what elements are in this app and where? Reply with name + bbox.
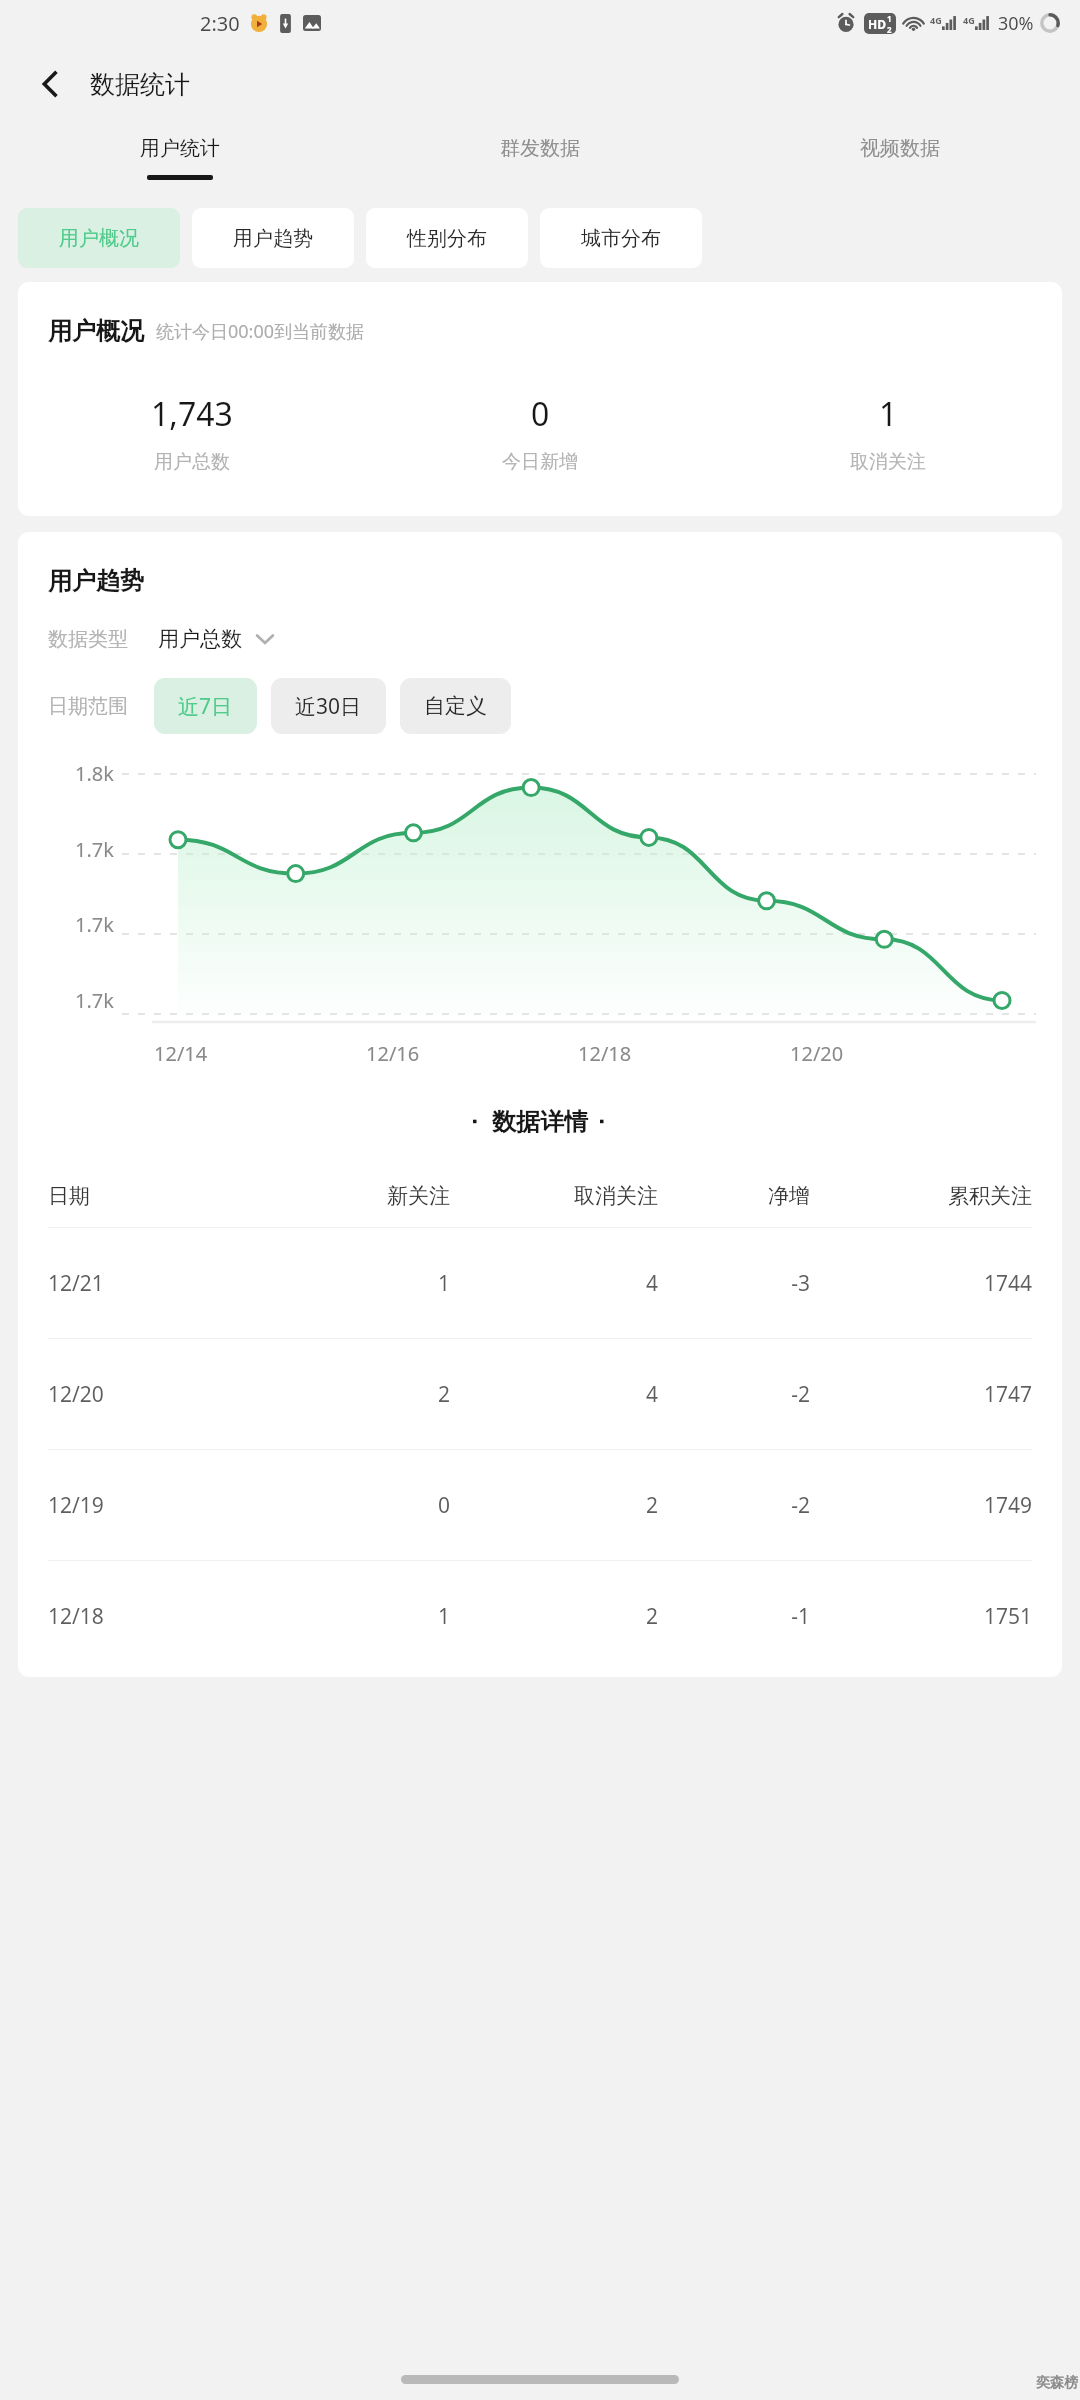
button[interactable]: 近30日	[271, 678, 386, 734]
button[interactable]: 12/20	[18, 1339, 1062, 1449]
staticText: -2	[658, 1380, 810, 1409]
staticText: -2	[658, 1491, 810, 1520]
staticText: 0	[531, 392, 550, 436]
staticText: 用户总数	[154, 450, 230, 474]
staticText: 2:30	[200, 10, 240, 37]
staticText: 30%	[998, 11, 1034, 36]
staticText: 12/20	[790, 1040, 844, 1067]
staticText: 用户概况	[59, 226, 139, 251]
staticText: 今日新增	[502, 450, 578, 474]
button[interactable]: 用户统计	[0, 122, 360, 198]
staticText: 1	[256, 1269, 450, 1298]
staticText: 12/14	[154, 1040, 208, 1067]
staticText: 近7日	[178, 692, 233, 721]
staticText: 4G	[930, 14, 942, 26]
button[interactable]: 群发数据	[360, 122, 720, 198]
staticText: 群发数据	[500, 136, 580, 161]
staticText: 1751	[810, 1602, 1032, 1631]
staticText: 奕森榜	[1036, 2374, 1078, 2392]
button[interactable]: 自定义	[400, 678, 511, 734]
staticText: 12/21	[48, 1269, 256, 1298]
staticText: 1	[879, 392, 898, 436]
staticText: 数据详情	[492, 1107, 588, 1137]
staticText: 1	[256, 1602, 450, 1631]
staticText: 1.7k	[75, 836, 114, 863]
staticText: 累积关注	[810, 1183, 1032, 1209]
staticText: 4G	[963, 14, 975, 26]
staticText: -3	[658, 1269, 810, 1298]
staticText: 12/18	[48, 1602, 256, 1631]
staticText: -1	[658, 1602, 810, 1631]
staticText: 净增	[658, 1183, 810, 1209]
button[interactable]: 城市分布	[540, 208, 702, 268]
staticText: 1744	[810, 1269, 1032, 1298]
staticText: 数据类型	[48, 627, 128, 652]
staticText: 4	[450, 1380, 658, 1409]
button[interactable]: Back	[26, 60, 74, 108]
staticText: 日期范围	[48, 694, 128, 719]
button[interactable]: 12/19	[18, 1450, 1062, 1560]
button[interactable]: 用户概况	[18, 208, 180, 268]
staticText: 2	[256, 1380, 450, 1409]
staticText: 自定义	[424, 693, 487, 719]
button[interactable]: 视频数据	[720, 122, 1080, 198]
staticText: 1.7k	[75, 987, 114, 1014]
staticText: 1747	[810, 1380, 1032, 1409]
button[interactable]: 12/21	[18, 1228, 1062, 1338]
staticText: 2	[450, 1602, 658, 1631]
staticText: 新关注	[256, 1183, 450, 1209]
staticText: 数据统计	[90, 69, 190, 100]
staticText: 用户概况	[48, 316, 144, 346]
staticText: 用户总数	[158, 626, 242, 652]
staticText: 12/18	[578, 1040, 632, 1067]
button[interactable]: 用户趋势	[192, 208, 354, 268]
staticText: 统计今日00:00到当前数据	[156, 319, 365, 344]
staticText: 日期	[48, 1183, 256, 1209]
staticText: 1	[887, 13, 892, 24]
staticText: HD	[868, 16, 886, 32]
staticText: 0	[256, 1491, 450, 1520]
staticText: 2	[887, 24, 892, 34]
staticText: 用户统计	[140, 136, 220, 161]
staticText: 2	[450, 1491, 658, 1520]
staticText: 1.8k	[75, 760, 114, 787]
staticText: 近30日	[295, 692, 362, 721]
staticText: 12/20	[48, 1380, 256, 1409]
button[interactable]: 用户总数	[158, 626, 276, 652]
staticText: 城市分布	[581, 226, 661, 251]
staticText: 12/16	[366, 1040, 420, 1067]
staticText: 12/19	[48, 1491, 256, 1520]
staticText: 用户趋势	[48, 566, 144, 596]
staticText: 视频数据	[860, 136, 940, 161]
staticText: 取消关注	[850, 450, 926, 474]
button[interactable]: 12/18	[18, 1561, 1062, 1671]
button[interactable]: 性别分布	[366, 208, 528, 268]
staticText: 1749	[810, 1491, 1032, 1520]
staticText: 4	[450, 1269, 658, 1298]
staticText: 用户趋势	[233, 226, 313, 251]
staticText: 取消关注	[450, 1183, 658, 1209]
button[interactable]: 近7日	[154, 678, 257, 734]
staticText: 1.7k	[75, 911, 114, 938]
staticText: 1,743	[151, 392, 233, 436]
staticText: 性别分布	[407, 226, 487, 251]
